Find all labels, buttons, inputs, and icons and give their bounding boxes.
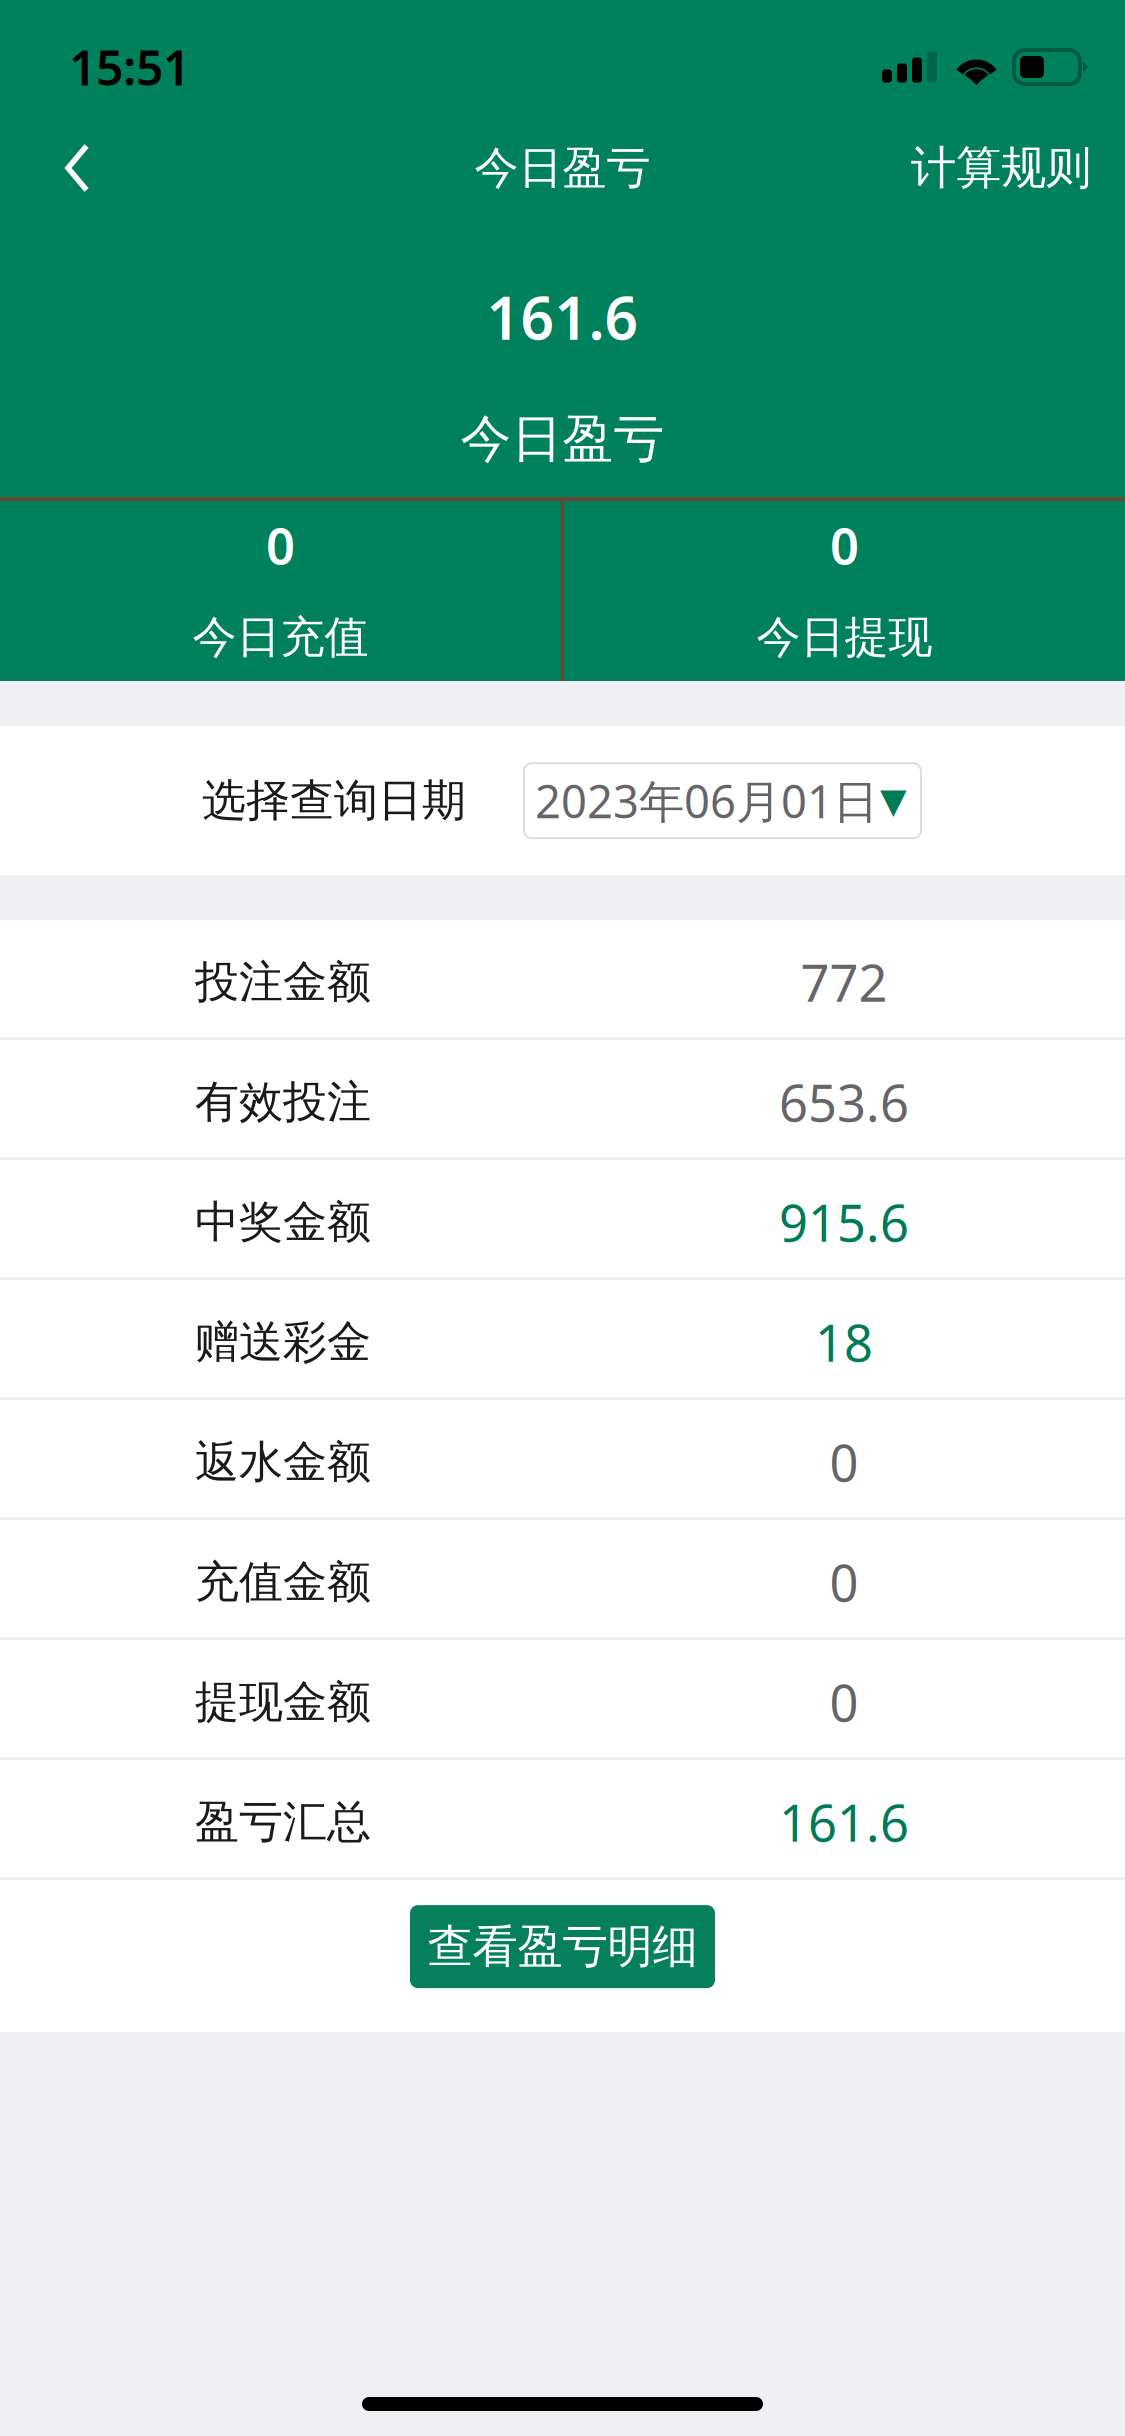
staticText: 提现金额 xyxy=(195,1675,371,1729)
staticText: 0 xyxy=(829,1548,858,1616)
button[interactable]: 计算规则 xyxy=(867,121,1125,215)
staticText: 0 xyxy=(829,1428,858,1496)
staticText: 今日盈亏 xyxy=(474,141,650,195)
staticText: 盈亏汇总 xyxy=(195,1795,371,1849)
staticText: 赠送彩金 xyxy=(195,1315,371,1369)
staticText: 2023年06月01日 xyxy=(535,770,878,831)
staticText: 161.6 xyxy=(779,1788,909,1856)
staticText: 返水金额 xyxy=(195,1435,371,1489)
staticText: 今日充值 xyxy=(192,610,368,664)
staticText: 653.6 xyxy=(779,1068,909,1136)
staticText: 0 xyxy=(830,511,859,578)
staticText: 充值金额 xyxy=(195,1555,371,1609)
staticText: 投注金额 xyxy=(195,955,371,1009)
staticText: 今日提现 xyxy=(756,610,932,664)
staticText: 中奖金额 xyxy=(195,1195,371,1249)
staticText: 选择查询日期 xyxy=(202,774,466,828)
staticText: 0 xyxy=(829,1668,858,1736)
staticText: 161.6 xyxy=(486,278,638,356)
staticText: ▼ xyxy=(880,781,907,820)
staticText: 915.6 xyxy=(779,1188,909,1256)
staticText: 0 xyxy=(266,511,295,578)
staticText: 772 xyxy=(800,948,887,1016)
staticText: 18 xyxy=(815,1308,873,1376)
button[interactable]: 2023年06月01日 xyxy=(524,763,921,838)
staticText: 有效投注 xyxy=(195,1075,371,1129)
staticText: 15:51 xyxy=(69,35,190,99)
button[interactable]: 查看盈亏明细 xyxy=(410,1905,715,1988)
staticText: 查看盈亏明细 xyxy=(427,1919,697,1974)
staticText: 计算规则 xyxy=(911,140,1091,196)
staticText: 今日盈亏 xyxy=(460,408,664,470)
button[interactable]: Back xyxy=(0,121,134,215)
